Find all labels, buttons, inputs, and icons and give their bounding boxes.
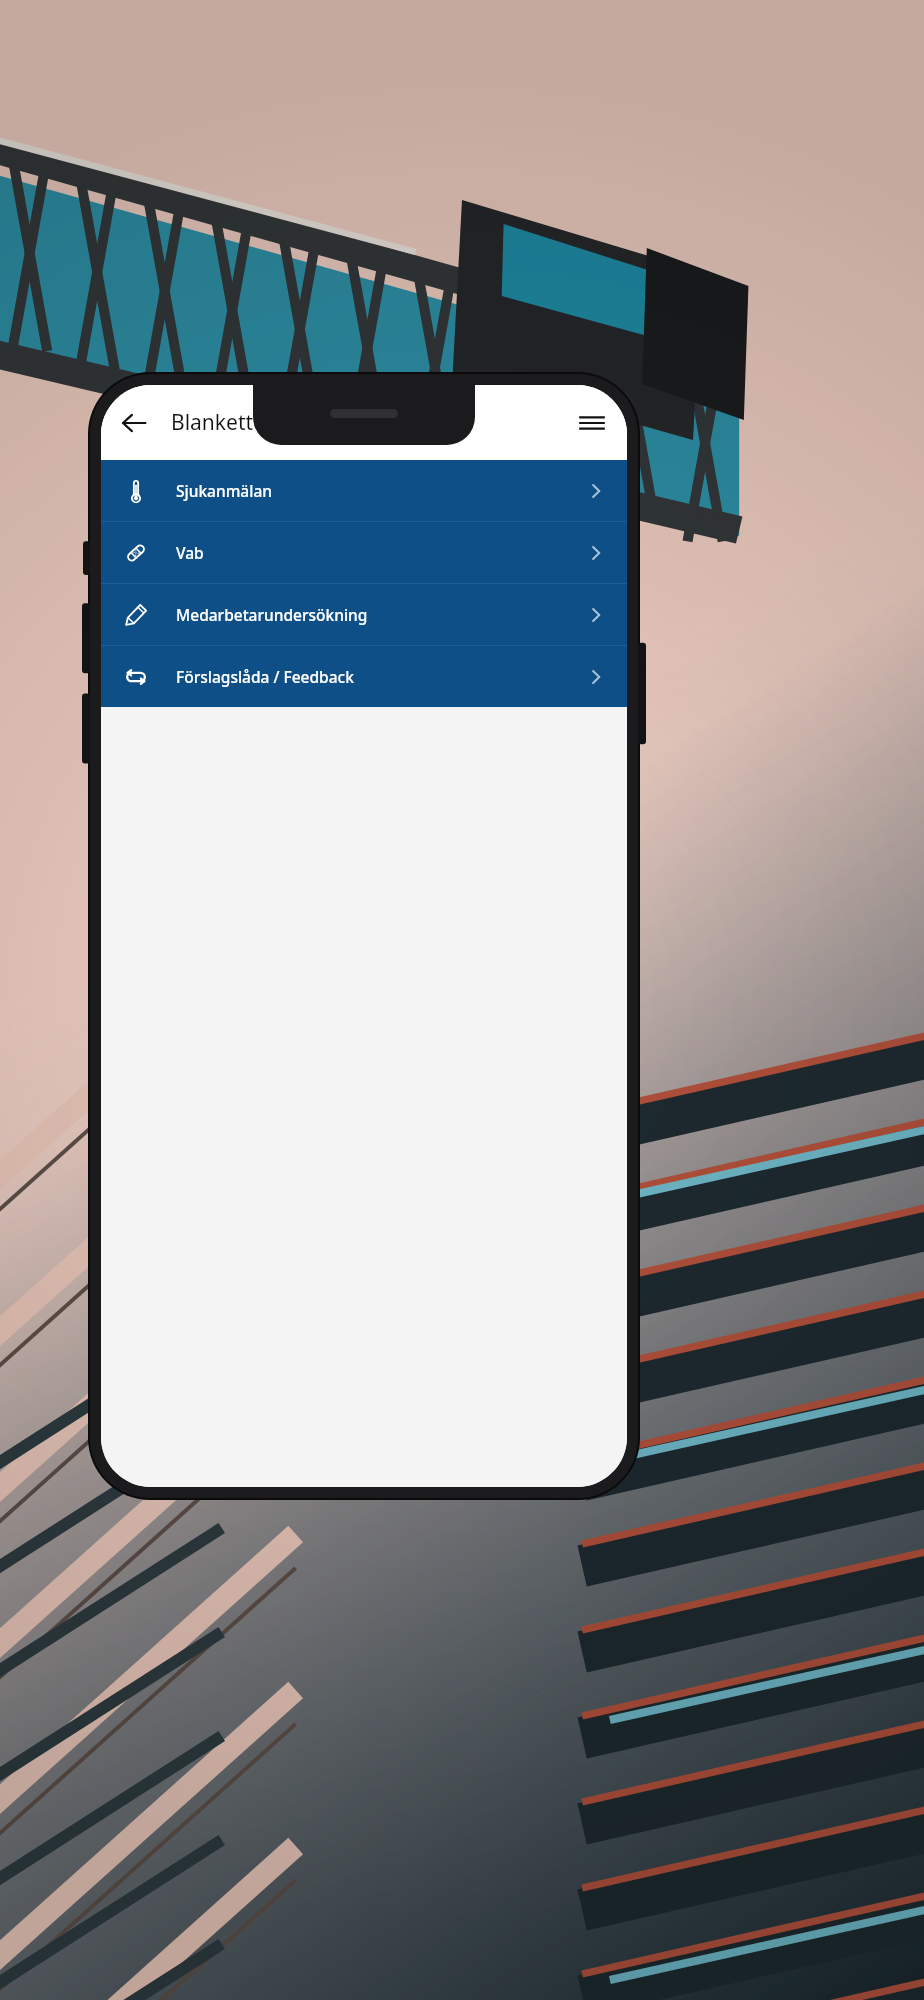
button[interactable]: Menu [567, 398, 617, 448]
staticText: Förslagslåda / Feedback [176, 666, 354, 687]
staticText: Sjukanmälan [176, 480, 272, 501]
button[interactable]: Vab [101, 522, 627, 583]
staticText: Blanketter [171, 408, 274, 437]
button[interactable]: Sjukanmälan [101, 460, 627, 521]
button[interactable]: Medarbetarundersökning [101, 584, 627, 645]
button[interactable]: Förslagslåda / Feedback [101, 646, 627, 707]
button[interactable]: Back [109, 398, 159, 448]
staticText: Vab [176, 542, 204, 563]
staticText: Medarbetarundersökning [176, 604, 368, 625]
